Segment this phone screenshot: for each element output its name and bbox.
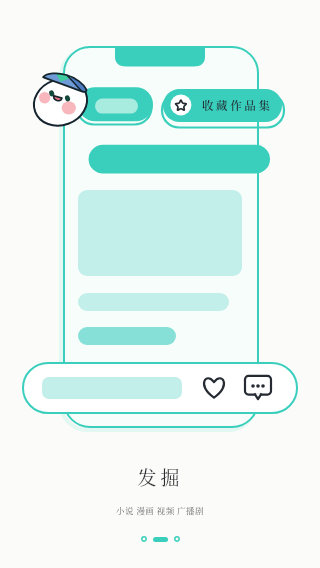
button[interactable]: Page 3 xyxy=(174,536,180,542)
staticText: 发掘 xyxy=(137,463,184,490)
button[interactable]: Page 2 xyxy=(153,537,168,542)
button[interactable]: 收藏作品集 xyxy=(163,89,282,122)
staticText: 收藏作品集 xyxy=(202,97,273,114)
button[interactable]: Page 1 xyxy=(141,536,147,542)
staticText: 小说 漫画 视频 广播剧 xyxy=(116,504,204,516)
